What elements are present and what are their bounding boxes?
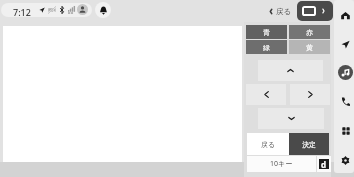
button[interactable]: 黄 xyxy=(289,40,330,54)
staticText: 戻る xyxy=(276,7,292,16)
button[interactable]: Notifications xyxy=(95,2,111,18)
button[interactable]: Right xyxy=(290,84,330,105)
button[interactable]: Screen layout xyxy=(297,1,333,21)
button[interactable]: Up xyxy=(258,60,323,81)
staticText: 緑 xyxy=(263,43,270,52)
button[interactable]: Music xyxy=(338,65,353,80)
button[interactable]: 決定 xyxy=(289,133,329,155)
button[interactable]: Phone xyxy=(338,94,353,109)
staticText: 黄 xyxy=(306,43,313,52)
button[interactable]: 戻る xyxy=(247,133,290,155)
staticText: 青 xyxy=(263,28,270,37)
button[interactable]: 戻る xyxy=(267,2,294,20)
button[interactable]: 10キー xyxy=(247,156,316,172)
button[interactable]: 緑 xyxy=(246,40,287,54)
staticText: d xyxy=(321,159,327,169)
button[interactable]: 赤 xyxy=(289,25,330,39)
button[interactable]: Down xyxy=(258,108,324,129)
staticText: 決定 xyxy=(302,140,316,149)
staticText: 10キー xyxy=(270,159,293,169)
button[interactable]: Navigation xyxy=(338,37,353,52)
button[interactable]: Settings xyxy=(338,153,353,168)
button[interactable]: Home xyxy=(338,8,353,23)
button[interactable]: Keyboard xyxy=(319,159,329,169)
button[interactable]: Left xyxy=(246,84,286,105)
button[interactable]: 7:12 xyxy=(1,3,92,17)
button[interactable]: 青 xyxy=(246,25,287,39)
button[interactable]: Apps xyxy=(338,123,353,138)
staticText: 戻る xyxy=(261,140,276,149)
staticText: 赤 xyxy=(306,28,313,37)
staticText: 7:12 xyxy=(13,6,31,17)
